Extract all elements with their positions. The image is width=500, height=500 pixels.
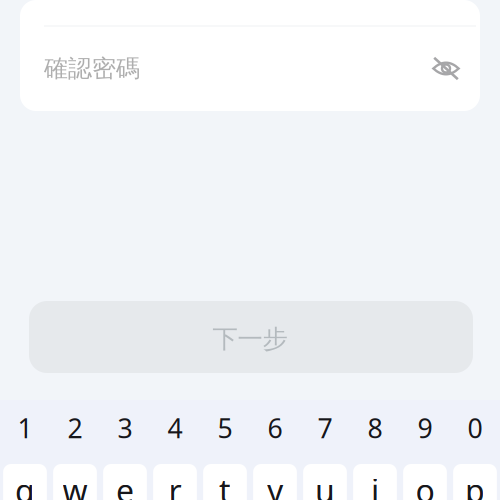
staticText: 2 xyxy=(67,410,82,446)
button[interactable]: 1 xyxy=(0,405,50,451)
staticText: 5 xyxy=(217,410,232,446)
button[interactable]: q xyxy=(0,464,50,500)
button[interactable]: e xyxy=(100,464,150,500)
staticText: 4 xyxy=(167,410,182,446)
staticText: e xyxy=(116,469,134,500)
staticText: 1 xyxy=(17,410,32,446)
staticText: 0 xyxy=(467,410,482,446)
staticText: 8 xyxy=(367,410,382,446)
staticText: 6 xyxy=(267,410,282,446)
button[interactable]: Show password xyxy=(426,27,466,110)
staticText: w xyxy=(62,469,87,500)
button[interactable]: 7 xyxy=(300,405,350,451)
staticText: 確認密碼 xyxy=(44,54,140,83)
staticText: q xyxy=(15,469,35,500)
button[interactable]: 確認密碼 xyxy=(44,27,426,110)
button[interactable]: 8 xyxy=(350,405,400,451)
staticText: 7 xyxy=(317,410,332,446)
staticText: u xyxy=(315,469,335,500)
button[interactable]: y xyxy=(250,464,300,500)
staticText: y xyxy=(267,469,283,500)
staticText: r xyxy=(168,469,181,500)
staticText: p xyxy=(465,469,485,500)
button[interactable]: 2 xyxy=(50,405,100,451)
button[interactable]: 3 xyxy=(100,405,150,451)
button[interactable]: 4 xyxy=(150,405,200,451)
button[interactable]: 6 xyxy=(250,405,300,451)
button[interactable]: t xyxy=(200,464,250,500)
button[interactable]: o xyxy=(400,464,450,500)
button[interactable]: 0 xyxy=(450,405,500,451)
button[interactable]: 9 xyxy=(400,405,450,451)
staticText: 下一步 xyxy=(212,323,287,354)
button[interactable]: 下一步 xyxy=(29,301,473,373)
staticText: i xyxy=(371,469,379,500)
button[interactable]: u xyxy=(300,464,350,500)
staticText: 3 xyxy=(117,410,132,446)
button[interactable]: 5 xyxy=(200,405,250,451)
button[interactable]: p xyxy=(450,464,500,500)
button[interactable]: i xyxy=(350,464,400,500)
button[interactable]: w xyxy=(50,464,100,500)
staticText: 9 xyxy=(417,410,432,446)
staticText: o xyxy=(415,469,434,500)
button[interactable]: r xyxy=(150,464,200,500)
staticText: t xyxy=(219,469,231,500)
